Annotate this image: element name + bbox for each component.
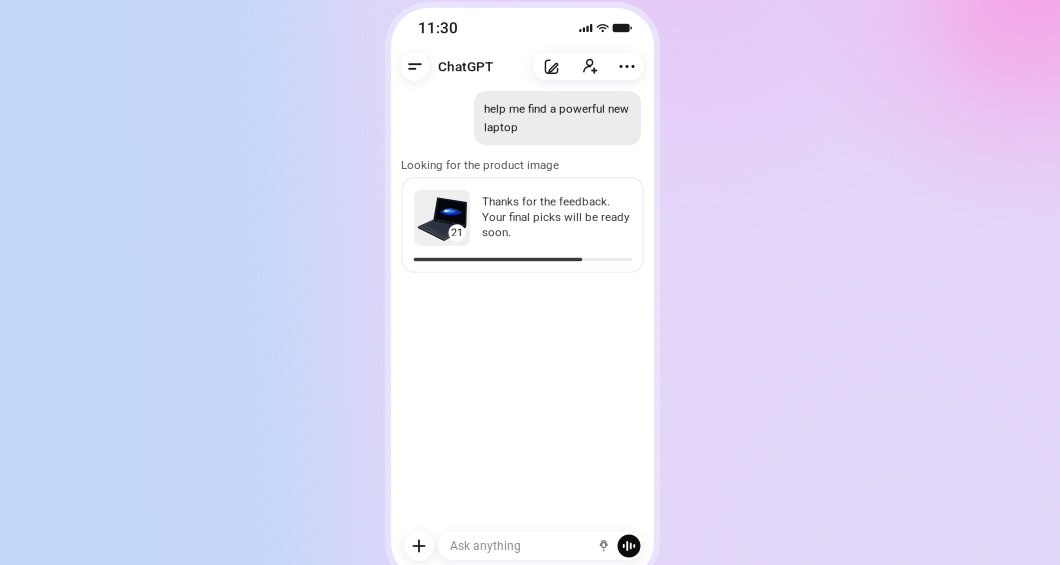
staticText: Thanks for the feedback. Your final pick… xyxy=(482,195,629,239)
button[interactable]: More options xyxy=(617,53,637,80)
staticText: help me find a powerful new laptop xyxy=(484,102,629,134)
button[interactable]: New chat xyxy=(540,53,563,80)
staticText: 11:30 xyxy=(418,19,458,37)
staticText: Looking for the product image xyxy=(401,158,559,172)
staticText: Ask anything xyxy=(450,539,521,553)
button[interactable]: Invite people xyxy=(579,53,602,80)
staticText: 21 xyxy=(451,226,463,239)
button[interactable]: Add attachment xyxy=(404,531,434,561)
staticText: ChatGPT xyxy=(438,58,493,74)
button[interactable]: Open sidebar xyxy=(400,52,429,81)
button[interactable]: Ask anything xyxy=(438,532,643,560)
